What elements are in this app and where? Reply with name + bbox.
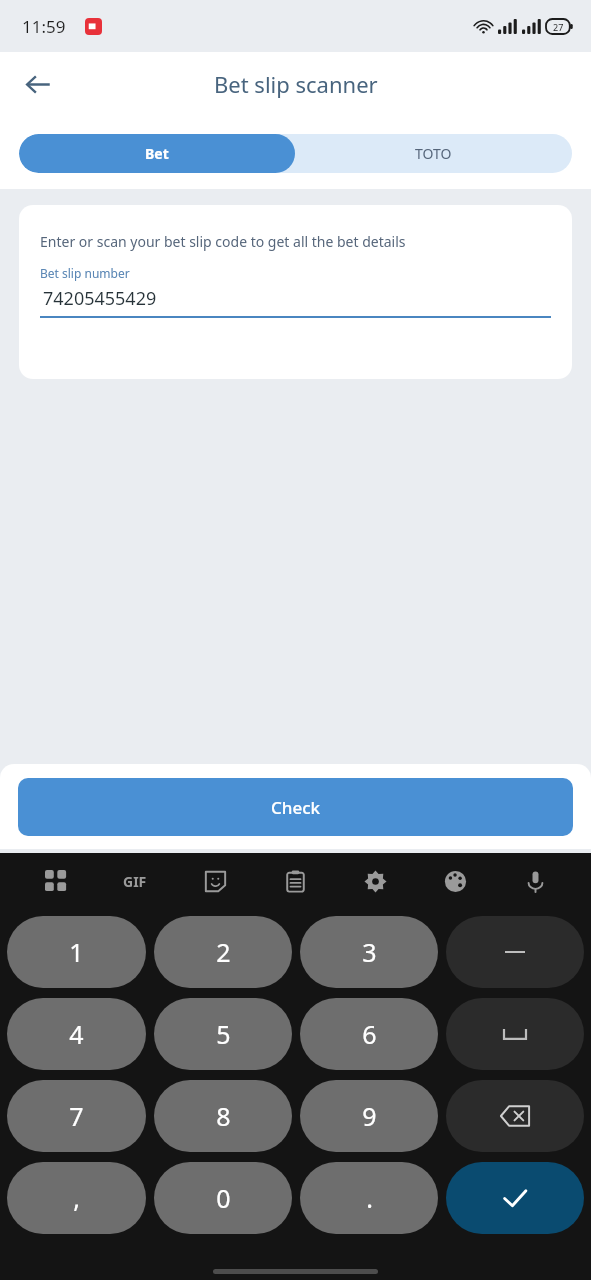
staticText: 3	[362, 935, 377, 969]
button[interactable]: ,	[7, 1162, 146, 1234]
staticText: 74205455429	[43, 286, 157, 311]
staticText: 4	[69, 1017, 84, 1051]
button[interactable]: Dash	[446, 916, 584, 988]
button[interactable]: 0	[154, 1162, 292, 1234]
button[interactable]: Check	[18, 778, 573, 836]
button[interactable]: 9	[300, 1080, 438, 1152]
button[interactable]: Enter	[446, 1162, 584, 1234]
button[interactable]: GIF	[95, 853, 175, 909]
staticText: Bet	[145, 144, 169, 163]
staticText: 7	[69, 1099, 84, 1133]
staticText: 27	[553, 21, 564, 33]
staticText: 8	[216, 1099, 231, 1133]
button[interactable]: Voice input	[495, 853, 575, 909]
button[interactable]: TOTO	[295, 134, 572, 173]
button[interactable]: 8	[154, 1080, 292, 1152]
staticText: Bet slip scanner	[214, 69, 378, 99]
staticText: Check	[271, 796, 321, 819]
staticText: .	[366, 1181, 373, 1215]
button[interactable]: Space	[446, 998, 584, 1070]
staticText: Enter or scan your bet slip code to get …	[40, 232, 406, 251]
staticText: 9	[362, 1099, 377, 1133]
staticText: 0	[216, 1181, 231, 1215]
staticText: 5	[216, 1017, 231, 1051]
button[interactable]: 7	[7, 1080, 146, 1152]
staticText: 6	[362, 1017, 377, 1051]
staticText: GIF	[123, 872, 147, 891]
staticText: Bet slip number	[40, 265, 130, 281]
button[interactable]: 5	[154, 998, 292, 1070]
button[interactable]: 2	[154, 916, 292, 988]
button[interactable]: Back	[14, 60, 62, 108]
button[interactable]: 3	[300, 916, 438, 988]
button[interactable]: 6	[300, 998, 438, 1070]
button[interactable]: Apps	[16, 853, 95, 909]
button[interactable]: 4	[7, 998, 146, 1070]
button[interactable]: Settings	[335, 853, 415, 909]
button[interactable]: Bet	[19, 134, 295, 173]
staticText: 11:59	[22, 15, 66, 38]
button[interactable]: Stickers	[175, 853, 255, 909]
button[interactable]: Clipboard	[255, 853, 335, 909]
button[interactable]: Backspace	[446, 1080, 584, 1152]
button[interactable]: .	[300, 1162, 438, 1234]
staticText: 2	[216, 935, 231, 969]
button[interactable]: 1	[7, 916, 146, 988]
staticText: ,	[73, 1181, 80, 1215]
button[interactable]: 74205455429	[40, 286, 551, 318]
staticText: 1	[69, 935, 84, 969]
button[interactable]: Theme	[415, 853, 495, 909]
staticText: TOTO	[415, 144, 452, 163]
